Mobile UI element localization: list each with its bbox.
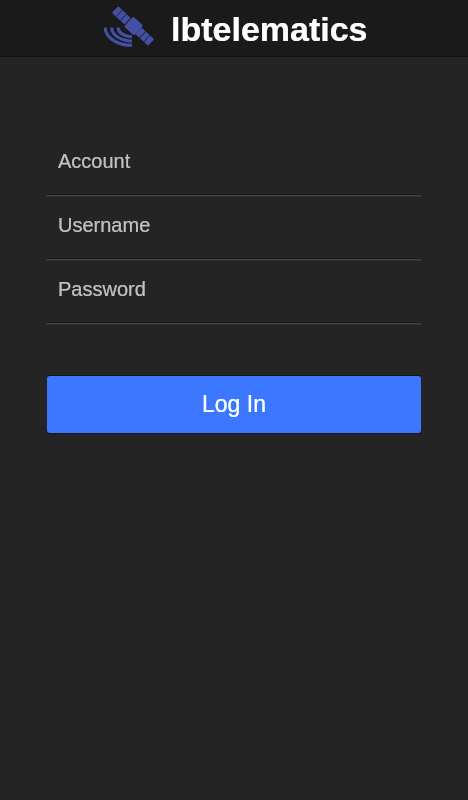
staticText: Password <box>58 278 146 300</box>
button[interactable]: Account <box>47 133 421 197</box>
other: lbtelematics logo <box>104 8 154 48</box>
staticText: Username <box>58 214 151 236</box>
staticText: Account <box>58 150 131 172</box>
button[interactable]: Log In <box>47 376 421 433</box>
staticText: lbtelematics <box>171 10 368 48</box>
button[interactable]: Password <box>47 261 421 325</box>
staticText: Log In <box>202 391 266 417</box>
button[interactable]: Username <box>47 197 421 261</box>
